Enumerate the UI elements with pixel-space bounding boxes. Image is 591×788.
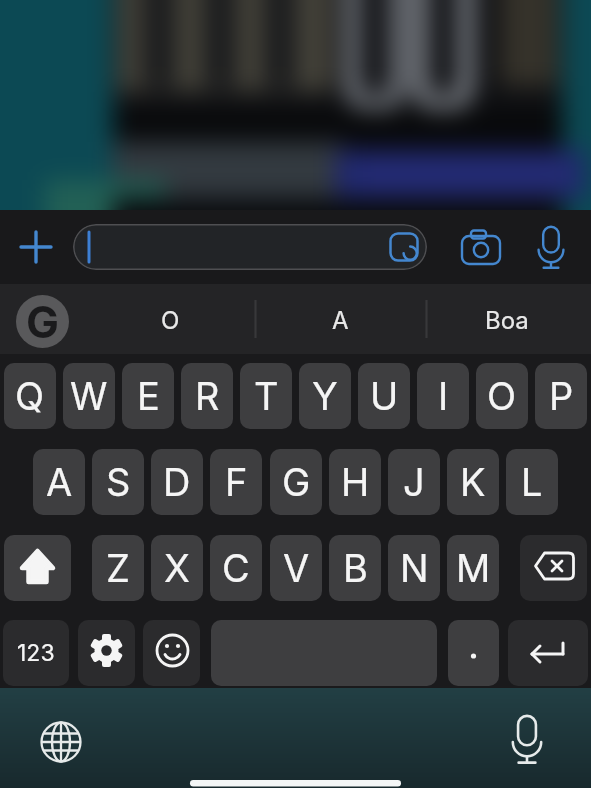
button[interactable]: O xyxy=(476,363,528,429)
button[interactable] xyxy=(16,227,56,267)
staticText: J xyxy=(403,459,425,505)
staticText: A xyxy=(46,459,73,505)
button[interactable]: S xyxy=(92,449,144,515)
staticText: B xyxy=(343,545,368,591)
staticText: M xyxy=(456,545,491,591)
button[interactable]: I xyxy=(417,363,469,429)
button[interactable]: 123 xyxy=(3,620,69,686)
staticText: O xyxy=(161,306,180,335)
button[interactable] xyxy=(78,620,135,686)
button[interactable]: P xyxy=(535,363,587,429)
staticText: Q xyxy=(15,373,45,419)
staticText: N xyxy=(400,545,429,591)
staticText: P xyxy=(549,373,574,419)
staticText: V xyxy=(283,545,310,591)
button[interactable]: Z xyxy=(92,535,144,601)
button[interactable]: A xyxy=(33,449,85,515)
staticText: K xyxy=(460,459,486,505)
staticText: O xyxy=(487,373,517,419)
button[interactable] xyxy=(143,620,200,686)
staticText: H xyxy=(341,459,370,505)
button[interactable]: H xyxy=(329,449,381,515)
staticText: U xyxy=(370,373,399,419)
button[interactable]: U xyxy=(358,363,410,429)
staticText: A xyxy=(332,306,349,335)
button[interactable]: W xyxy=(63,363,115,429)
button[interactable]: R xyxy=(181,363,233,429)
staticText: 123 xyxy=(17,639,55,667)
button[interactable]: T xyxy=(240,363,292,429)
staticText: Z xyxy=(106,545,130,591)
button[interactable] xyxy=(4,535,71,601)
button[interactable]: J xyxy=(388,449,440,515)
staticText: F xyxy=(225,459,248,505)
button[interactable] xyxy=(73,224,427,270)
staticText: D xyxy=(163,459,191,505)
button[interactable]: K xyxy=(447,449,499,515)
button[interactable] xyxy=(508,715,546,769)
button[interactable]: G xyxy=(16,295,69,348)
button[interactable]: O xyxy=(100,290,240,350)
button[interactable] xyxy=(38,719,84,765)
staticText: Y xyxy=(312,373,338,419)
button[interactable]: N xyxy=(388,535,440,601)
staticText: S xyxy=(106,459,131,505)
button[interactable] xyxy=(448,620,499,686)
staticText: I xyxy=(438,373,449,419)
button[interactable]: F xyxy=(210,449,262,515)
button[interactable]: Boa xyxy=(437,290,577,350)
button[interactable]: X xyxy=(151,535,203,601)
button[interactable] xyxy=(458,226,504,268)
staticText: Boa xyxy=(485,306,529,335)
staticText: C xyxy=(222,545,250,591)
button[interactable]: Q xyxy=(4,363,56,429)
staticText: E xyxy=(137,373,160,419)
button[interactable] xyxy=(534,224,568,270)
button[interactable]: Y xyxy=(299,363,351,429)
staticText: W xyxy=(70,373,108,419)
button[interactable]: V xyxy=(270,535,322,601)
staticText: X xyxy=(164,545,190,591)
button[interactable]: B xyxy=(329,535,381,601)
button[interactable] xyxy=(508,620,588,686)
button[interactable]: A xyxy=(270,290,410,350)
button[interactable]: L xyxy=(506,449,558,515)
staticText: T xyxy=(254,373,279,419)
staticText: R xyxy=(195,373,220,419)
staticText: G xyxy=(26,295,60,348)
button[interactable]: G xyxy=(270,449,322,515)
button[interactable]: D xyxy=(151,449,203,515)
button[interactable] xyxy=(520,535,587,601)
button[interactable]: E xyxy=(122,363,174,429)
staticText: L xyxy=(521,459,543,505)
button[interactable]: M xyxy=(447,535,499,601)
staticText: G xyxy=(282,459,311,505)
button[interactable]: C xyxy=(210,535,262,601)
